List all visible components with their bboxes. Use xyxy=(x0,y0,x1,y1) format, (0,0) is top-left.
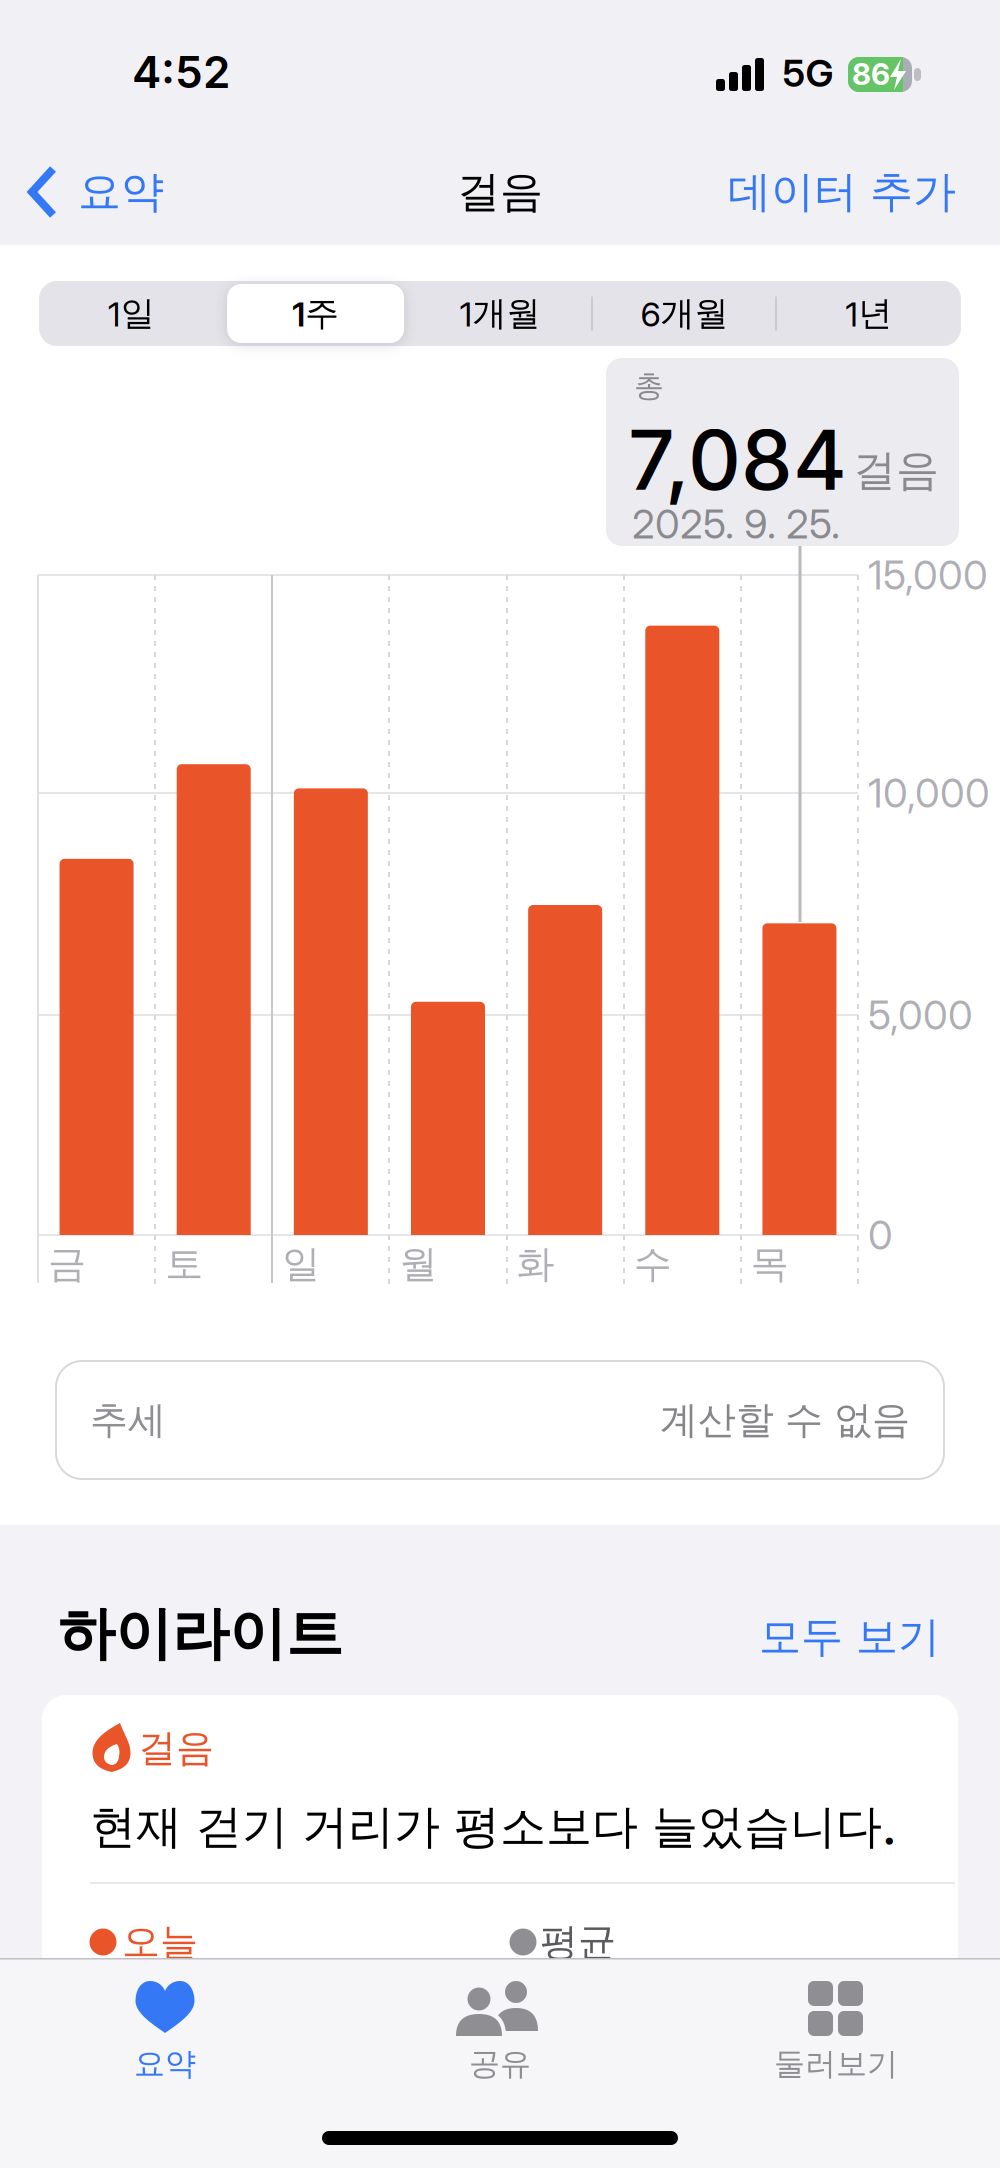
staticText: 2025. 9. 25. xyxy=(632,500,840,548)
staticText: 1년 xyxy=(845,292,892,335)
staticText: 5G xyxy=(782,50,833,96)
staticText: 걸음 xyxy=(138,1724,214,1772)
staticText: 화 xyxy=(517,1240,555,1288)
button[interactable]: 1일 xyxy=(39,281,223,346)
staticText: 데이터 추가 xyxy=(728,165,956,219)
staticText: 86 xyxy=(852,56,890,92)
button[interactable]: 요약 xyxy=(65,1960,265,2076)
staticText: 걸음 xyxy=(457,165,543,219)
staticText: 요약 xyxy=(78,165,164,219)
staticText: 1일 xyxy=(108,292,155,335)
staticText: 일 xyxy=(282,1240,320,1288)
staticText: 현재 걷기 거리가 평소보다 늘었습니다. xyxy=(90,1798,897,1856)
staticText: 총 xyxy=(634,367,664,405)
staticText: 10,000 xyxy=(868,769,990,817)
staticText: 4:52 xyxy=(132,45,230,99)
staticText: 6개월 xyxy=(640,292,728,335)
button[interactable]: 공유 xyxy=(400,1960,600,2076)
staticText: 공유 xyxy=(469,2044,531,2084)
button[interactable]: 걸음 xyxy=(42,1695,958,1995)
staticText: 계산할 수 없음 xyxy=(660,1396,910,1444)
staticText: 7,084 xyxy=(628,410,847,510)
staticText: 1주 xyxy=(292,292,339,335)
button[interactable]: 1주 xyxy=(224,281,408,346)
staticText: 월 xyxy=(399,1240,437,1288)
button[interactable]: 요약으로 돌아가기 xyxy=(30,160,230,224)
button[interactable]: 데이터 추가 xyxy=(636,160,956,224)
staticText: 0 xyxy=(868,1211,893,1259)
staticText: 모두 보기 xyxy=(759,1610,940,1663)
staticText: 평균 xyxy=(540,1918,616,1966)
staticText: 추세 xyxy=(90,1396,166,1444)
button[interactable]: 둘러보기 xyxy=(716,1960,956,2076)
button[interactable]: 1년 xyxy=(777,281,961,346)
staticText: 15,000 xyxy=(868,551,988,599)
staticText: 하이라이트 xyxy=(58,1598,343,1670)
staticText: 토 xyxy=(165,1240,203,1288)
staticText: 수 xyxy=(634,1240,672,1288)
staticText: 둘러보기 xyxy=(774,2044,898,2084)
staticText: 걸음 xyxy=(853,443,939,498)
staticText: 5,000 xyxy=(868,991,973,1039)
button[interactable]: 6개월 xyxy=(592,281,776,346)
button[interactable]: 모두 보기 xyxy=(660,1609,940,1665)
staticText: 목 xyxy=(751,1240,789,1288)
staticText: 요약 xyxy=(134,2044,196,2084)
staticText: 오늘 xyxy=(122,1918,198,1966)
staticText: 금 xyxy=(48,1240,86,1288)
button[interactable]: 1개월 xyxy=(408,281,592,346)
staticText: 1개월 xyxy=(459,292,540,335)
